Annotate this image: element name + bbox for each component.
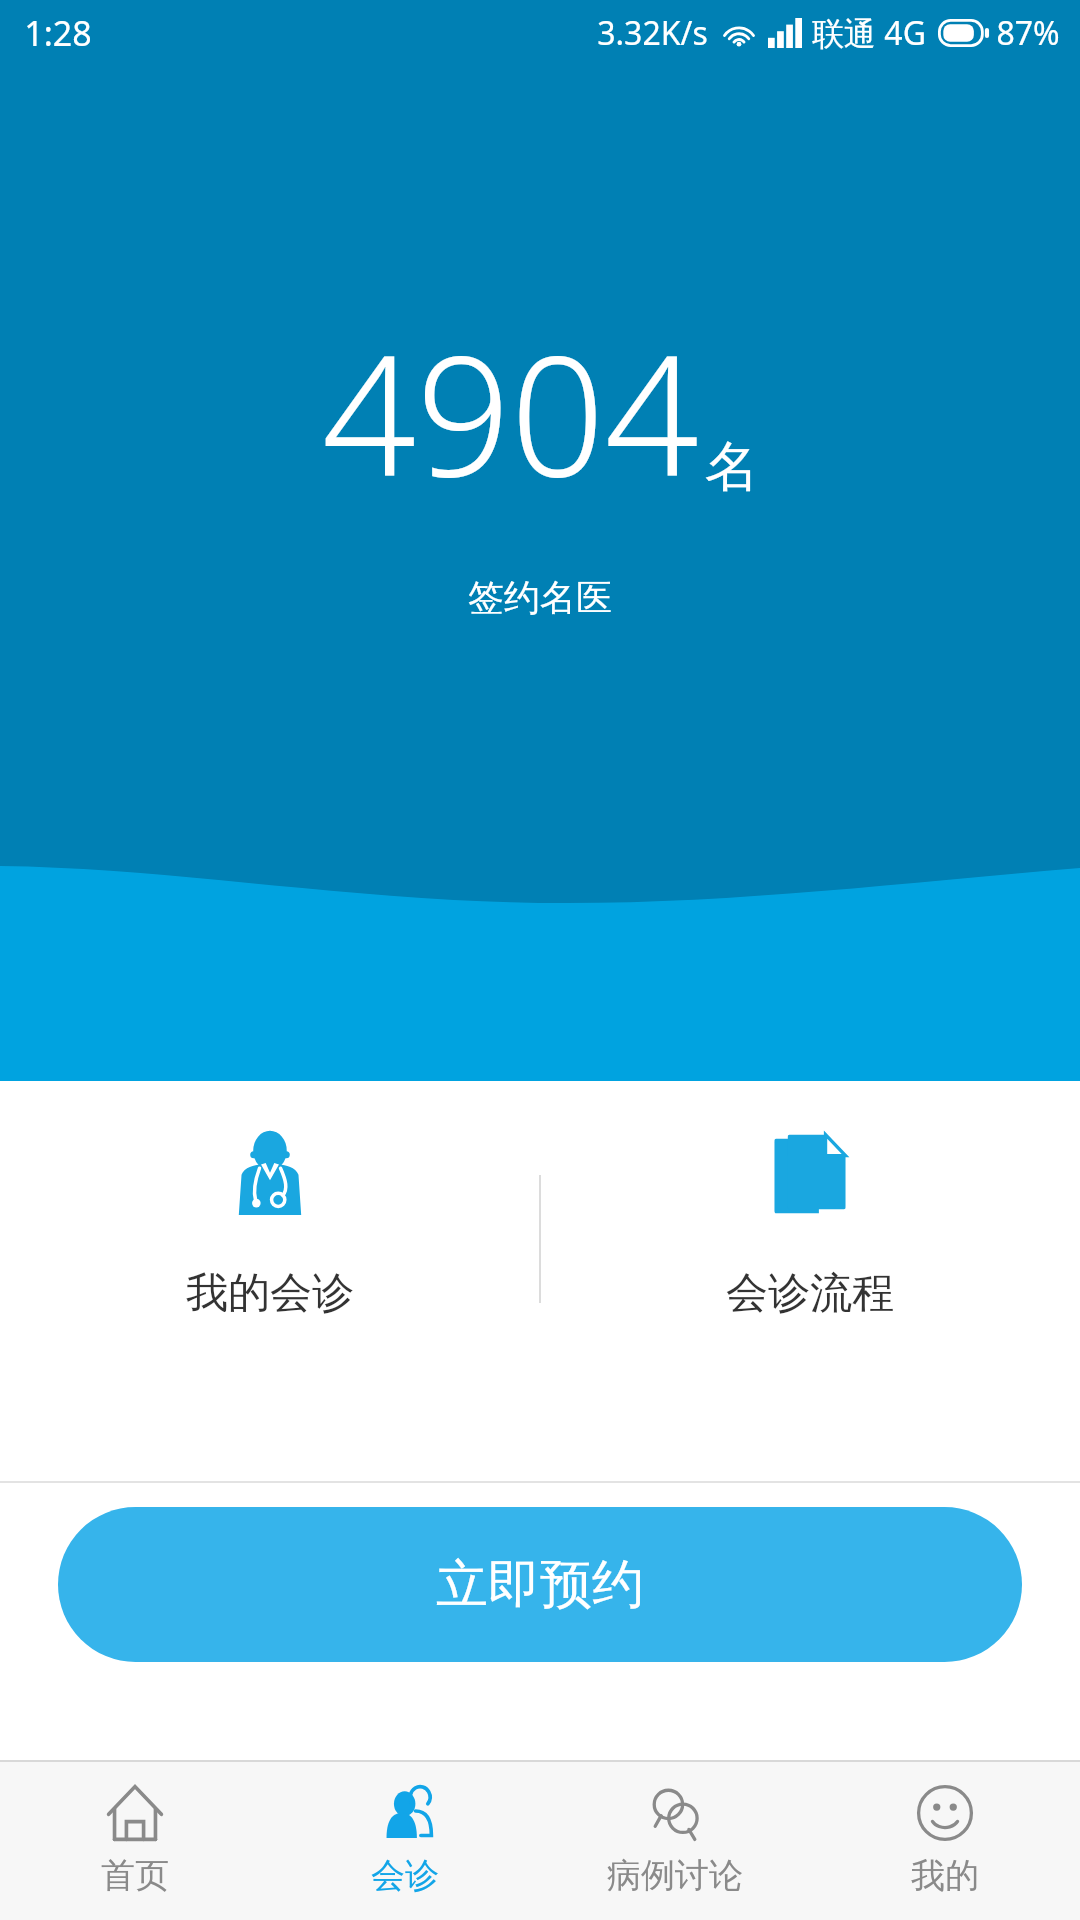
staticText: 会诊流程 (726, 1267, 894, 1320)
staticText: 我的会诊 (186, 1267, 354, 1320)
staticText: 病例讨论 (607, 1854, 743, 1897)
button[interactable]: 我的 (810, 1762, 1080, 1920)
staticText: 会诊 (371, 1854, 439, 1897)
staticText: 3.32K/s (597, 11, 708, 55)
staticText: 4904 (322, 300, 699, 525)
button[interactable]: 我的会诊 (0, 1081, 540, 1481)
staticText: 立即预约 (436, 1552, 644, 1618)
staticText: 1:28 (24, 10, 92, 56)
staticText: 首页 (101, 1854, 169, 1897)
staticText: 联通 4G (812, 11, 926, 55)
staticText: 87% (996, 11, 1060, 55)
button[interactable]: 立即预约 (58, 1507, 1022, 1662)
button[interactable]: 会诊流程 (540, 1081, 1080, 1481)
staticText: 签约名医 (468, 575, 612, 620)
staticText: 名 (705, 433, 759, 501)
button[interactable]: 会诊 (270, 1762, 540, 1920)
staticText: 我的 (911, 1854, 979, 1897)
button[interactable]: 首页 (0, 1762, 270, 1920)
button[interactable]: 病例讨论 (540, 1762, 810, 1920)
